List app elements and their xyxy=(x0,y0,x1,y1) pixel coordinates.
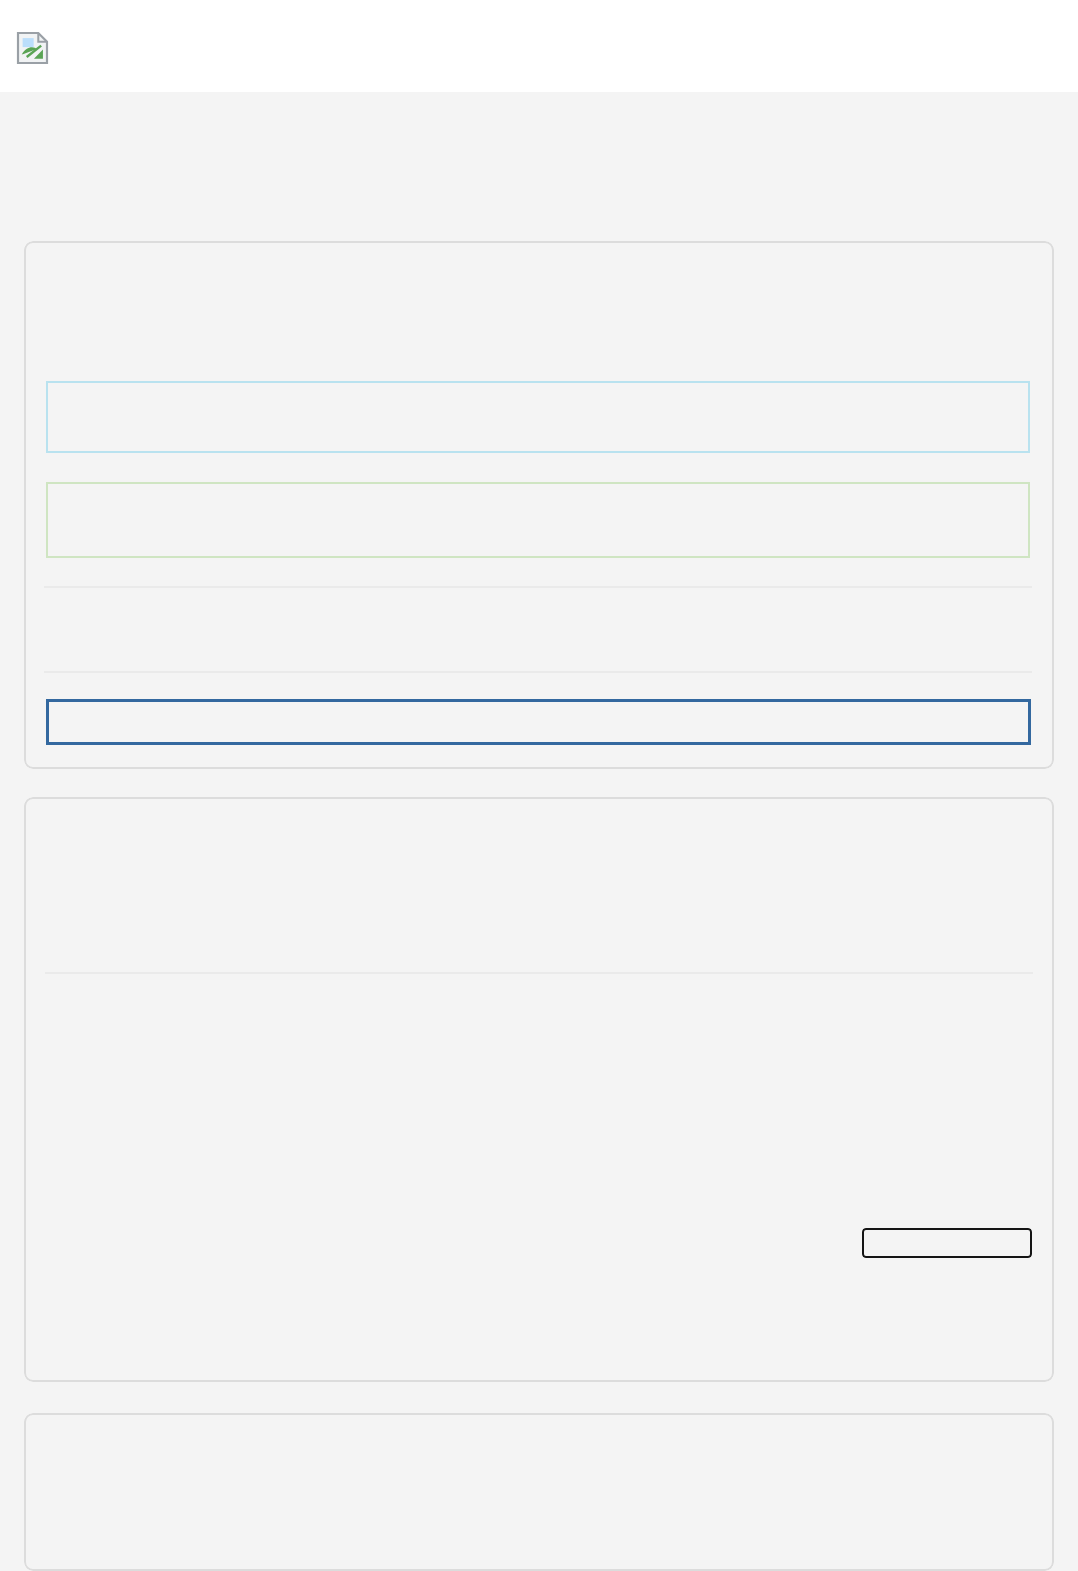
button[interactable]: Action xyxy=(862,1228,1032,1258)
button[interactable]: Site logo xyxy=(18,33,47,63)
button[interactable] xyxy=(46,381,1030,453)
button[interactable] xyxy=(46,482,1030,558)
button[interactable] xyxy=(46,699,1031,745)
